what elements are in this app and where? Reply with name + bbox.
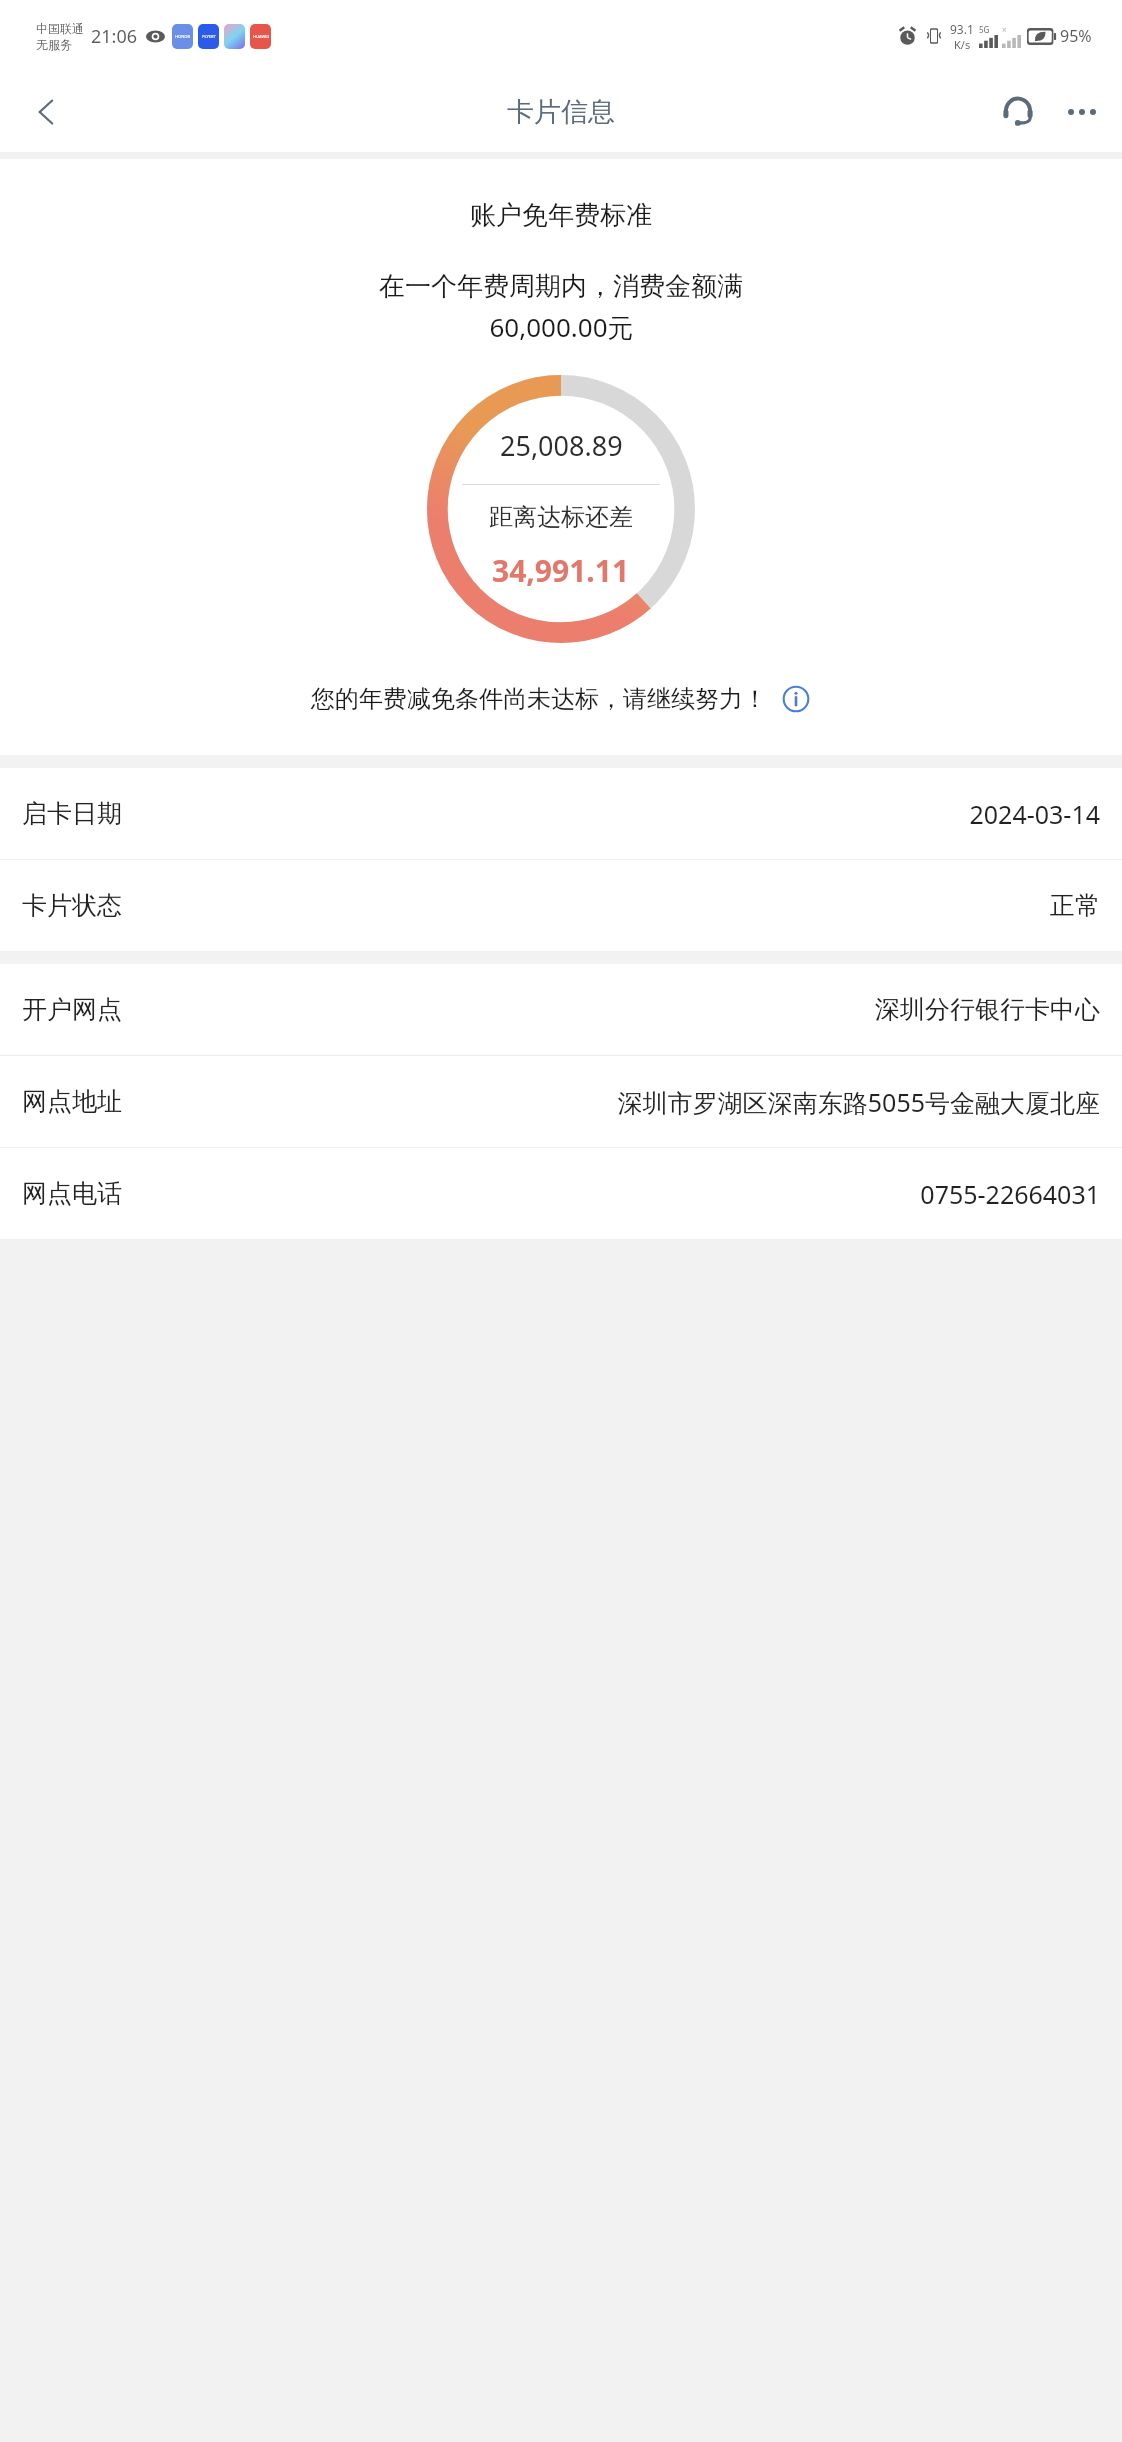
staticText: 25,008.89	[500, 427, 623, 464]
staticText: 您的年费减免条件尚未达标，请继续努力！	[311, 684, 767, 714]
staticText: 93.1	[950, 21, 974, 37]
staticText: 2024-03-14	[969, 797, 1100, 831]
button[interactable]: Back	[18, 83, 76, 141]
staticText: 在一个年费周期内，消费金额满	[379, 270, 743, 303]
button[interactable]: 网点地址	[0, 1056, 1122, 1147]
staticText: K/s	[954, 37, 971, 52]
staticText: 正常	[1050, 890, 1100, 921]
staticText: 95%	[1060, 25, 1092, 47]
staticText: 34,991.11	[492, 550, 630, 591]
staticText: ×	[1002, 24, 1007, 35]
staticText: 深圳市罗湖区深南东路5055号金融大厦北座	[617, 1085, 1100, 1119]
button[interactable]: 您的年费减免条件尚未达标，请继续努力！	[305, 680, 817, 718]
other: More information	[781, 684, 811, 714]
button[interactable]: More options	[1056, 86, 1108, 138]
button[interactable]: 启卡日期	[0, 768, 1122, 859]
button[interactable]: 网点电话	[0, 1148, 1122, 1239]
staticText: HUAWEI	[253, 34, 269, 39]
staticText: 卡片状态	[22, 890, 122, 921]
staticText: 网点电话	[22, 1178, 122, 1209]
staticText: 启卡日期	[22, 798, 122, 829]
staticText: 5G	[979, 24, 990, 35]
staticText: 距离达标还差	[489, 502, 633, 532]
button[interactable]: 卡片状态	[0, 860, 1122, 951]
staticText: 深圳分行银行卡中心	[875, 994, 1100, 1025]
staticText: 账户免年费标准	[470, 199, 652, 232]
staticText: FLYERT	[202, 34, 216, 39]
staticText: 开户网点	[22, 994, 122, 1025]
staticText: 0755-22664031	[920, 1177, 1100, 1211]
staticText: 中国联通	[36, 21, 84, 36]
staticText: 无服务	[36, 37, 72, 52]
staticText: 21:06	[91, 24, 138, 49]
staticText: 60,000.00元	[489, 309, 634, 345]
staticText: 网点地址	[22, 1086, 122, 1117]
staticText: HONOR	[175, 34, 190, 39]
button[interactable]: Customer service	[990, 84, 1046, 140]
staticText: 卡片信息	[507, 95, 615, 129]
button[interactable]: 开户网点	[0, 964, 1122, 1055]
